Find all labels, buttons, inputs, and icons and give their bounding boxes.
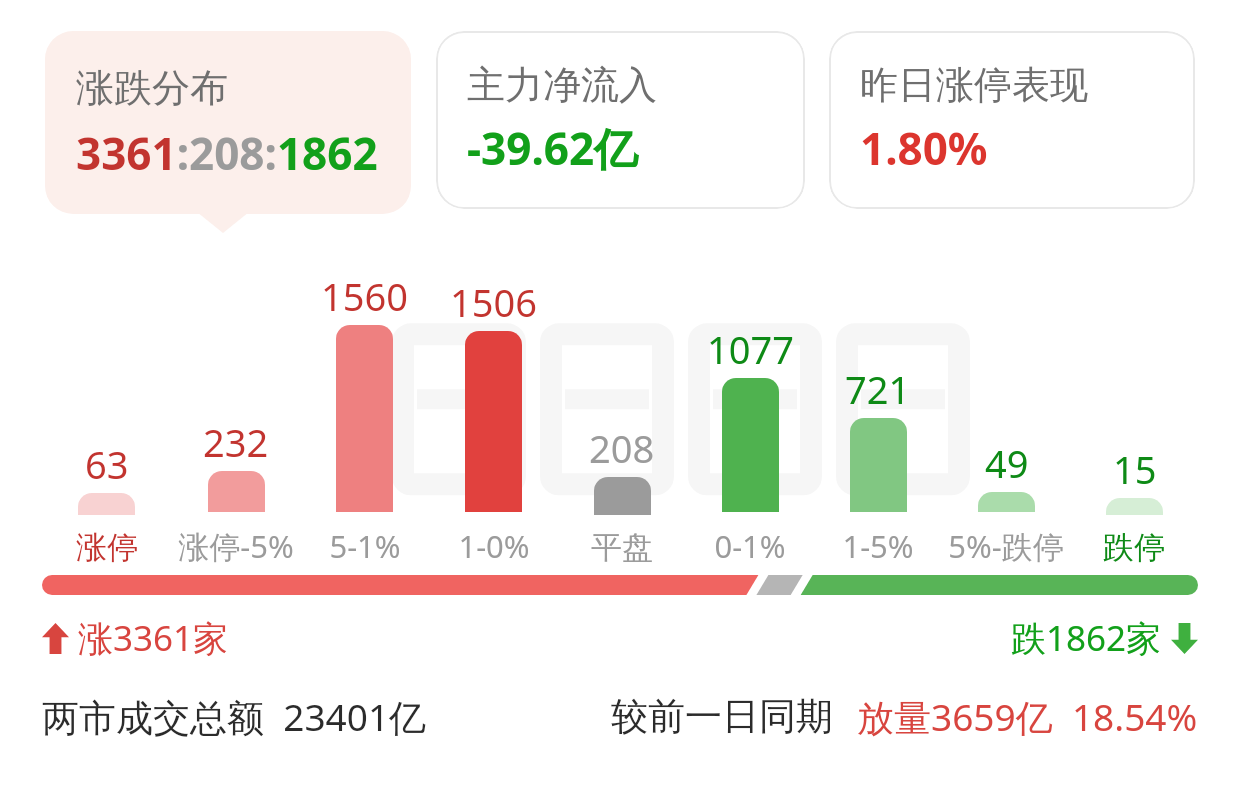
staticText: 两市成交总额 23401亿	[42, 691, 427, 742]
staticText: 涨跌分布	[76, 64, 228, 112]
button[interactable]: 昨日涨停表现	[829, 31, 1195, 209]
other: Advancing stocks	[42, 623, 69, 654]
button[interactable]: 跌1862家	[1011, 614, 1198, 662]
staticText: 主力净流入	[467, 61, 657, 109]
staticText: 昨日涨停表现	[860, 61, 1088, 109]
staticText: 208	[589, 422, 655, 474]
staticText: 1-0%	[458, 525, 530, 567]
staticText: 涨停	[76, 528, 138, 567]
staticText: 跌1862家	[1011, 614, 1162, 662]
button[interactable]: 1077	[686, 262, 814, 567]
button[interactable]: 1506	[429, 262, 558, 567]
button[interactable]: 15	[1070, 262, 1198, 567]
staticText: 涨3361家	[78, 614, 229, 662]
button[interactable]: 涨跌分布	[45, 31, 411, 214]
button[interactable]	[42, 575, 1198, 595]
button[interactable]: Advancing stocks	[42, 614, 229, 662]
button[interactable]: 主力净流入	[436, 31, 805, 209]
staticText: 1506	[450, 276, 537, 328]
staticText: 较前一日同期	[611, 693, 833, 740]
staticText: 放量3659亿 18.54%	[857, 691, 1198, 742]
staticText: 1560	[321, 270, 408, 322]
staticText: 63	[85, 438, 129, 490]
staticText: 49	[985, 437, 1029, 489]
button[interactable]: 1560	[300, 262, 429, 567]
button[interactable]: 721	[814, 262, 942, 567]
staticText: 3361:208:1862	[76, 123, 378, 183]
button[interactable]: 208	[558, 262, 686, 567]
staticText: 232	[203, 416, 269, 468]
staticText: 平盘	[591, 528, 653, 567]
staticText: 跌停	[1103, 528, 1165, 567]
button[interactable]: 49	[942, 262, 1070, 567]
staticText: -39.62亿	[467, 118, 639, 178]
staticText: 0-1%	[714, 525, 786, 567]
staticText: 1.80%	[860, 118, 988, 178]
staticText: 1-5%	[842, 525, 914, 567]
staticText: 5-1%	[329, 525, 401, 567]
other: Declining stocks	[1171, 623, 1198, 654]
staticText: 721	[845, 363, 911, 415]
button[interactable]: 63	[42, 262, 171, 567]
staticText: 1077	[707, 323, 794, 375]
staticText: 15	[1113, 443, 1157, 495]
staticText: 5%-跌停	[948, 525, 1064, 567]
staticText: 涨停-5%	[178, 525, 294, 567]
button[interactable]: 232	[171, 262, 300, 567]
